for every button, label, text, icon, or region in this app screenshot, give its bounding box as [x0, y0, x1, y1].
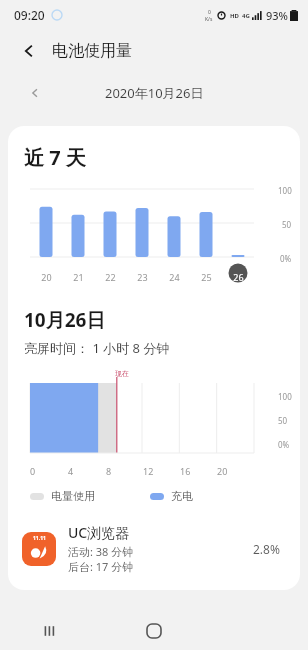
staticText: 2020年10月26日 [105, 84, 204, 102]
staticText: 50 [282, 219, 292, 230]
staticText: 0 [30, 465, 36, 477]
staticText: 8 [106, 465, 112, 477]
staticText: 26 [233, 271, 244, 283]
staticText: 亮屏时间： 1 小时 8 分钟 [24, 339, 170, 357]
staticText: 100 [278, 185, 292, 196]
staticText: 09:20 [14, 7, 45, 23]
staticText: 0% [278, 439, 290, 450]
staticText: 23 [137, 271, 148, 283]
staticText: K/s [205, 16, 213, 23]
staticText: HD [230, 12, 239, 20]
staticText: 后台: 17 分钟 [68, 559, 134, 574]
button[interactable]: 11.11 [8, 517, 300, 580]
button[interactable]: Home [102, 612, 205, 650]
staticText: 16 [180, 465, 191, 477]
staticText: 12 [143, 465, 154, 477]
staticText: 20 [217, 465, 228, 477]
staticText: 电量使用 [51, 489, 95, 503]
staticText: 4G [242, 12, 250, 20]
staticText: 50 [278, 415, 288, 426]
staticText: 4 [68, 465, 74, 477]
button[interactable]: Back [14, 36, 44, 66]
staticText: 25 [201, 271, 212, 283]
staticText: 93% [266, 8, 288, 23]
staticText: 电池使用量 [52, 41, 132, 61]
button[interactable]: Previous day [22, 80, 48, 106]
button[interactable]: Recents [0, 612, 102, 650]
staticText: 0 [208, 9, 211, 16]
staticText: 活动: 38 分钟 [68, 544, 134, 559]
staticText: 10月26日 [24, 307, 106, 333]
staticText: UC浏览器 [68, 523, 130, 542]
staticText: 22 [105, 271, 116, 283]
staticText: 现在 [115, 369, 129, 378]
staticText: 24 [169, 271, 180, 283]
staticText: 近 7 天 [24, 144, 86, 171]
staticText: 11.11 [33, 535, 46, 542]
staticText: 0% [280, 253, 292, 264]
staticText: 2.8% [253, 541, 280, 557]
staticText: 充电 [171, 489, 193, 503]
staticText: 20 [41, 271, 52, 283]
staticText: 100 [278, 391, 292, 402]
staticText: 21 [73, 271, 84, 283]
